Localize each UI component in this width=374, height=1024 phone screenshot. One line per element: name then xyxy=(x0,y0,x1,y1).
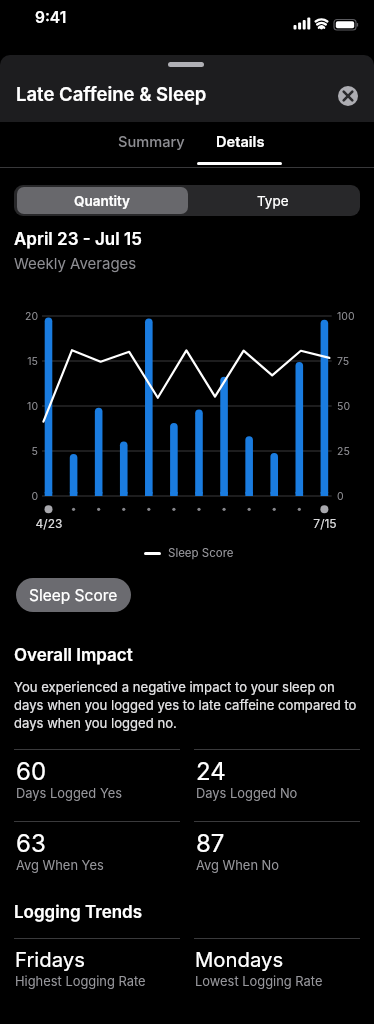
staticText: 75 xyxy=(337,355,350,368)
staticText: Avg When Yes xyxy=(16,858,104,874)
button[interactable]: Type xyxy=(188,187,358,214)
staticText: Avg When No xyxy=(196,858,280,874)
staticText: 25 xyxy=(337,445,350,458)
staticText: Weekly Averages xyxy=(14,254,137,272)
staticText: Mondays xyxy=(195,947,284,972)
staticText: 87 xyxy=(196,829,225,858)
staticText: Overall Impact xyxy=(14,645,133,666)
staticText: Quantity xyxy=(74,193,131,209)
staticText: Lowest Logging Rate xyxy=(195,974,323,990)
staticText: Late Caffeine & Sleep xyxy=(16,83,207,105)
staticText: Days Logged Yes xyxy=(16,786,122,802)
staticText: 5 xyxy=(0,445,38,458)
staticText: 4/23 xyxy=(24,516,74,531)
staticText: 0 xyxy=(0,490,38,503)
staticText: 9:41 xyxy=(35,8,67,27)
staticText: 24 xyxy=(196,757,226,786)
staticText: Sleep Score xyxy=(29,586,118,605)
staticText: Details xyxy=(216,133,265,151)
button[interactable]: Sleep Score xyxy=(16,578,131,612)
staticText: Fridays xyxy=(15,947,85,972)
staticText: Highest Logging Rate xyxy=(15,974,146,990)
staticText: Sleep Score xyxy=(168,546,234,560)
button[interactable]: Summary xyxy=(106,127,197,157)
staticText: 20 xyxy=(0,310,38,323)
staticText: 50 xyxy=(337,400,351,413)
staticText: 100 xyxy=(337,310,355,323)
staticText: Type xyxy=(257,193,289,209)
staticText: Logging Trends xyxy=(14,902,143,923)
staticText: 15 xyxy=(0,355,38,368)
staticText: April 23 - Jul 15 xyxy=(14,229,142,250)
button[interactable]: Quantity xyxy=(17,187,188,214)
staticText: You experienced a negative impact to you… xyxy=(14,679,357,731)
staticText: Days Logged No xyxy=(196,786,298,802)
staticText: 0 xyxy=(337,490,344,503)
staticText: Summary xyxy=(118,133,185,151)
staticText: 60 xyxy=(16,757,47,786)
staticText: 63 xyxy=(16,829,46,858)
button[interactable]: Details xyxy=(195,127,285,157)
staticText: 10 xyxy=(0,400,38,413)
button[interactable] xyxy=(338,86,358,106)
staticText: 7/15 xyxy=(300,516,350,531)
